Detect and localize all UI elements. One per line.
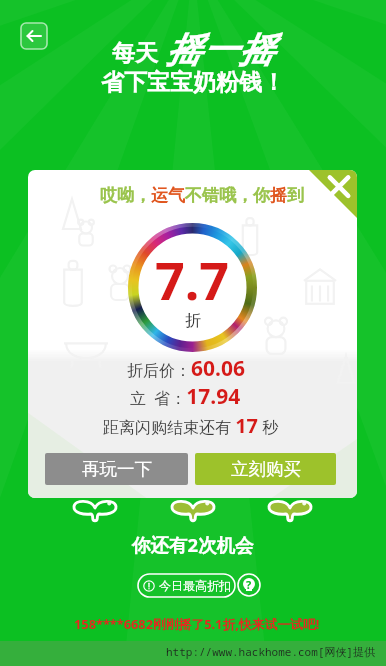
- staticText: 今日最高折扣: [159, 578, 231, 593]
- staticText: 7.7: [155, 244, 230, 315]
- staticText: 你还有2次机会: [132, 532, 254, 557]
- staticText: 折: [185, 311, 201, 331]
- staticText: 每天: [112, 39, 158, 68]
- button[interactable]: 今日最高折扣: [138, 574, 235, 597]
- button[interactable]: Close: [309, 170, 357, 218]
- staticText: 立刻购买: [231, 458, 301, 480]
- staticText: 折后价：60.06: [127, 354, 245, 383]
- button[interactable]: Help: [237, 573, 261, 597]
- staticText: 立 省：17.94: [130, 382, 241, 411]
- button[interactable]: 立刻购买: [195, 453, 336, 485]
- button[interactable]: 再玩一下: [45, 453, 188, 485]
- staticText: 摇一摇: [166, 28, 275, 72]
- button[interactable]: Back: [21, 23, 47, 49]
- staticText: 省下宝宝奶粉钱！: [101, 68, 285, 97]
- staticText: 哎呦，运气不错哦，你摇到: [100, 185, 304, 206]
- staticText: 158****6682刚刚摇了5.1折,快来试一试吧!: [74, 615, 320, 632]
- staticText: 距离闪购结束还有 17 秒: [103, 412, 279, 439]
- staticText: http://www.hackhome.com[网侠]提供: [166, 644, 375, 659]
- staticText: 再玩一下: [82, 458, 152, 480]
- staticText: ?: [246, 577, 252, 592]
